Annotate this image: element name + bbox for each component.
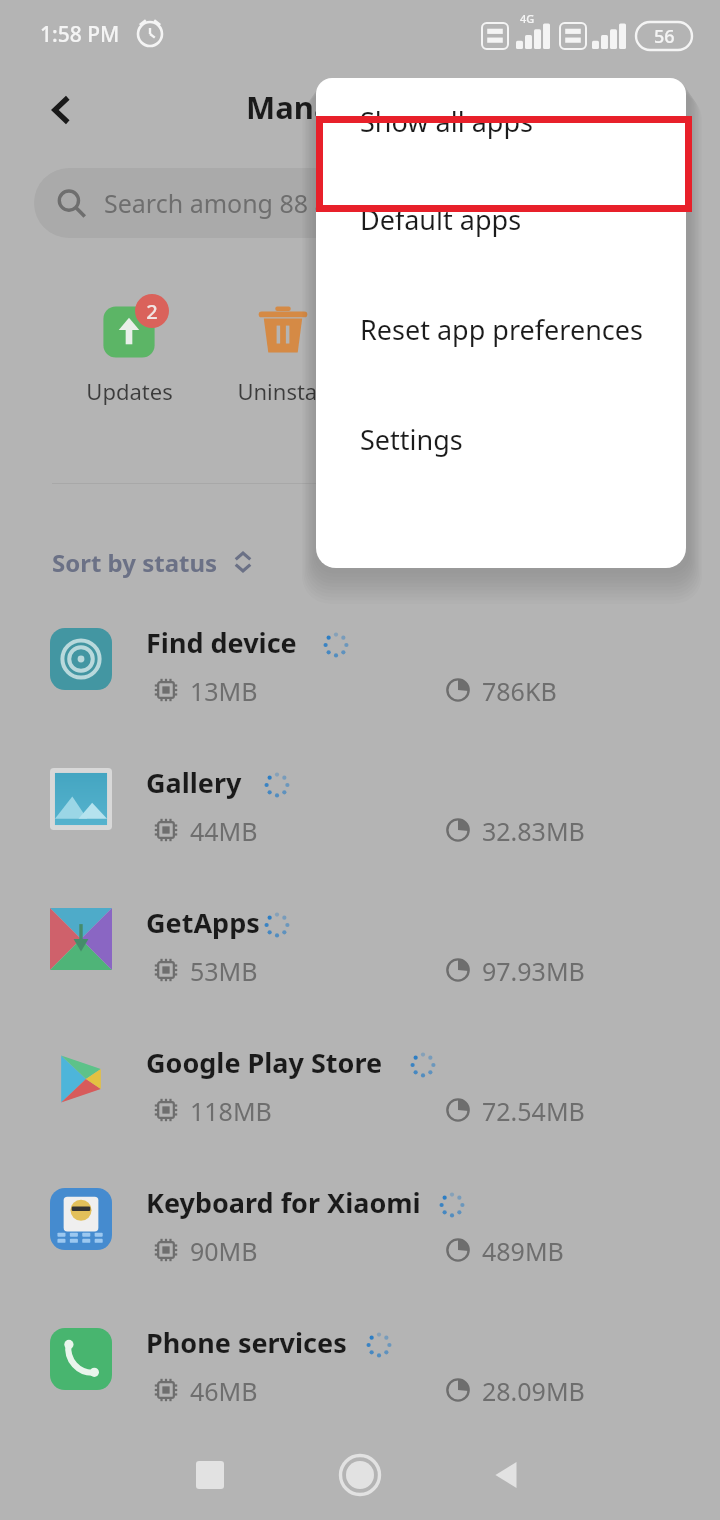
staticText: 90MB	[190, 1234, 258, 1268]
staticText: 489MB	[482, 1234, 564, 1268]
button[interactable]: Gallery	[0, 760, 720, 886]
staticText: 4G	[520, 11, 535, 26]
button[interactable]: Back	[0, 78, 720, 144]
staticText: Google Play Store	[146, 1044, 383, 1081]
button[interactable]: Permissions	[382, 300, 492, 436]
button[interactable]: Keyboard for Xiaomi	[0, 1180, 720, 1306]
staticText: 28.09MB	[482, 1374, 585, 1408]
staticText: 97.93MB	[482, 954, 585, 988]
staticText: Default apps	[360, 201, 522, 238]
staticText: Keyboard for Xiaomi	[146, 1184, 421, 1221]
staticText: Uninstall	[237, 376, 329, 406]
staticText: 72.54MB	[482, 1094, 585, 1128]
button[interactable]: Uninstall	[228, 300, 338, 406]
button[interactable]: Phone services	[0, 1320, 720, 1446]
staticText: 13MB	[190, 674, 258, 708]
staticText: Search among 88 apps	[104, 186, 372, 220]
button[interactable]: Search among 88 apps	[34, 168, 686, 238]
button[interactable]: Google Play Store	[0, 1040, 720, 1166]
button[interactable]: Default apps	[316, 164, 686, 274]
staticText: Phone services	[146, 1324, 347, 1361]
staticText: 786KB	[482, 674, 557, 708]
staticText: 118MB	[190, 1094, 272, 1128]
staticText: Permissions	[382, 376, 492, 436]
button[interactable]: Dual apps	[536, 300, 646, 406]
button[interactable]: Home	[325, 1440, 395, 1510]
staticText: 2	[146, 298, 158, 325]
staticText: GetApps	[146, 904, 260, 941]
button[interactable]: Recents	[175, 1440, 245, 1510]
staticText: Gallery	[146, 764, 242, 801]
staticText: Sort by status	[52, 546, 218, 579]
staticText: 46MB	[190, 1374, 258, 1408]
staticText: 44MB	[190, 814, 258, 848]
staticText: Manage apps	[246, 86, 452, 128]
staticText: Updates	[86, 376, 173, 406]
button[interactable]: Back	[472, 1440, 542, 1510]
button[interactable]: GetApps	[0, 900, 720, 1026]
button[interactable]: Settings	[316, 384, 686, 494]
staticText: 1:58 PM	[40, 20, 120, 49]
staticText: Reset app preferences	[360, 311, 643, 348]
staticText: Find device	[146, 624, 297, 661]
staticText: Settings	[360, 421, 463, 458]
staticText: 32.83MB	[482, 814, 585, 848]
staticText: 53MB	[190, 954, 258, 988]
staticText: Show all apps	[360, 103, 533, 140]
button[interactable]: Find device	[0, 620, 720, 746]
button[interactable]: Show all apps	[316, 78, 686, 164]
button[interactable]: Sort by status	[52, 538, 256, 586]
button[interactable]: Reset app preferences	[316, 274, 686, 384]
button[interactable]: 2	[74, 300, 184, 406]
staticText: 56	[654, 24, 675, 49]
